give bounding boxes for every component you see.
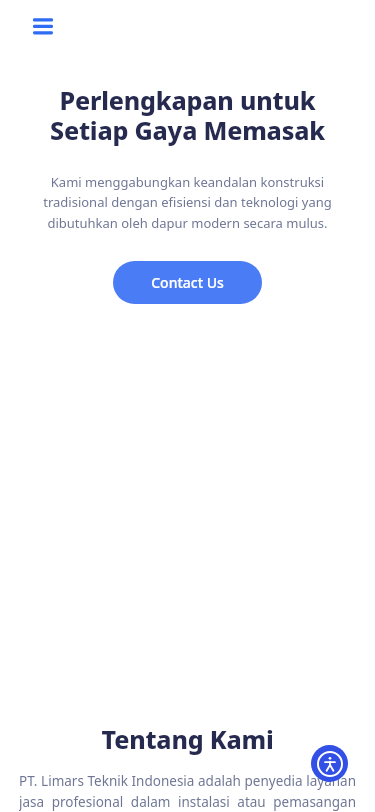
button[interactable]: Contact Us <box>113 261 262 304</box>
staticText: Contact Us <box>151 273 224 292</box>
button[interactable]: Accessibility options <box>311 745 348 782</box>
staticText: Tentang Kami <box>0 722 375 756</box>
button[interactable]: Open navigation menu <box>25 11 61 43</box>
staticText: PT. Limars Teknik Indonesia adalah penye… <box>19 772 356 812</box>
staticText: Kami menggabungkan keandalan konstruksi … <box>19 173 356 232</box>
staticText: Perlengkapan untuk Setiap Gaya Memasak <box>12 83 363 148</box>
